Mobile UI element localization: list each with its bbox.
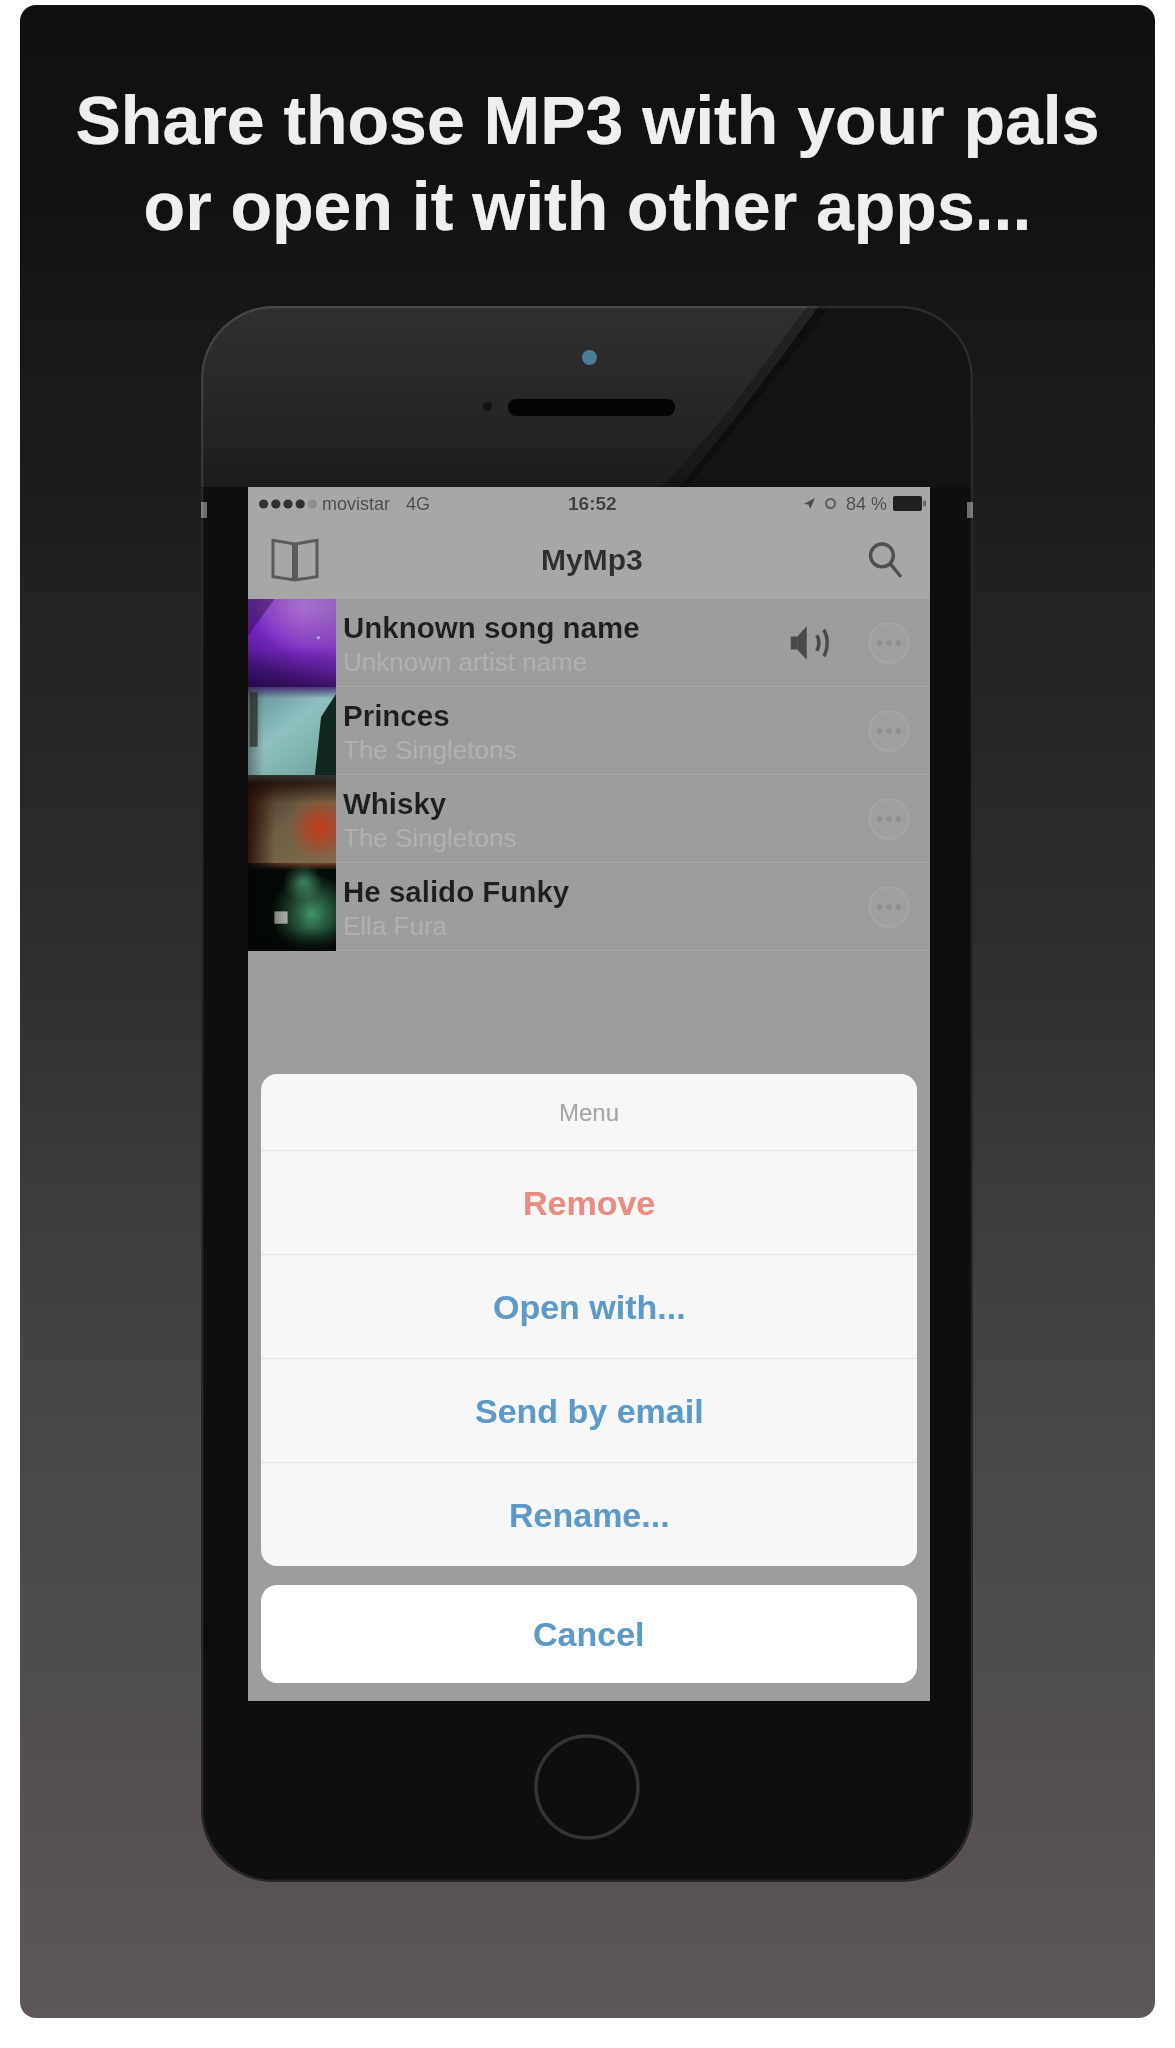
button[interactable]: Princes bbox=[248, 687, 930, 775]
button[interactable]: Library bbox=[264, 529, 326, 591]
staticText: Menu bbox=[559, 1099, 620, 1126]
button[interactable]: Search bbox=[858, 533, 912, 587]
button[interactable]: Unknown song name bbox=[248, 599, 930, 687]
button[interactable]: More options bbox=[868, 710, 910, 752]
staticText: Cancel bbox=[533, 1615, 645, 1653]
button[interactable]: Whisky bbox=[248, 775, 930, 863]
staticText: Rename... bbox=[509, 1496, 670, 1534]
staticText: movistar bbox=[322, 494, 391, 514]
staticText: Whisky bbox=[343, 787, 447, 820]
button[interactable]: Rename... bbox=[261, 1463, 917, 1566]
button[interactable]: Open with... bbox=[261, 1255, 917, 1358]
staticText: The Singletons bbox=[343, 735, 517, 764]
staticText: Send by email bbox=[475, 1392, 704, 1430]
staticText: MyMp3 bbox=[541, 543, 643, 577]
staticText: Open with... bbox=[493, 1288, 686, 1326]
staticText: Unknown song name bbox=[343, 611, 640, 644]
staticText: Unknown artist name bbox=[343, 647, 588, 676]
staticText: Princes bbox=[343, 699, 450, 732]
button[interactable]: Send by email bbox=[261, 1359, 917, 1462]
staticText: Share those MP3 with your pals or open i… bbox=[75, 82, 1100, 244]
button[interactable]: More options bbox=[868, 886, 910, 928]
staticText: The Singletons bbox=[343, 823, 517, 852]
button[interactable]: He salido Funky bbox=[248, 863, 930, 951]
staticText: 84 % bbox=[846, 494, 888, 514]
staticText: Remove bbox=[523, 1184, 656, 1222]
button[interactable]: Now playing bbox=[786, 620, 832, 666]
button[interactable]: Remove bbox=[261, 1151, 917, 1254]
button[interactable]: More options bbox=[868, 798, 910, 840]
staticText: 4G bbox=[406, 494, 431, 514]
button[interactable]: Cancel bbox=[261, 1585, 917, 1683]
staticText: Ella Fura bbox=[343, 911, 448, 940]
staticText: He salido Funky bbox=[343, 875, 570, 908]
staticText: 16:52 bbox=[568, 493, 617, 514]
button[interactable]: More options bbox=[868, 622, 910, 664]
